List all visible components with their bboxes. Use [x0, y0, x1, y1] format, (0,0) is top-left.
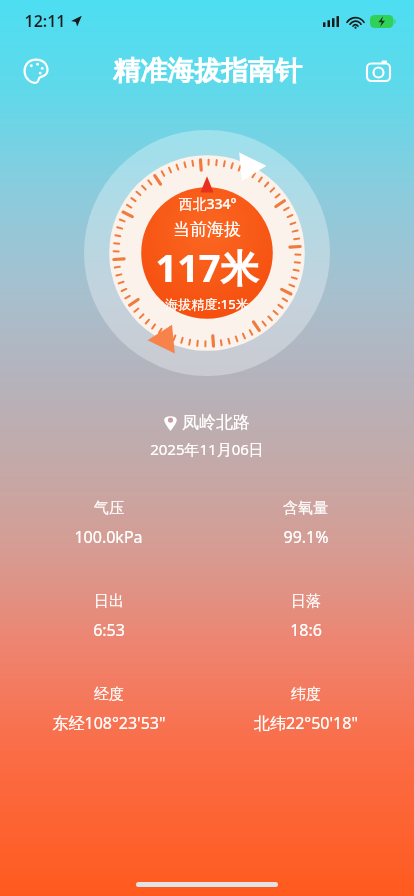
button[interactable]: 纬度: [207, 683, 404, 736]
button[interactable]: 凤岭北路: [158, 410, 256, 435]
button[interactable]: Compass dial: [84, 130, 330, 376]
staticText: 经度: [94, 685, 124, 704]
staticText: 凤岭北路: [182, 412, 250, 433]
staticText: 含氧量: [283, 499, 328, 518]
button[interactable]: 日出: [10, 590, 207, 643]
staticText: 日落: [291, 592, 321, 611]
staticText: 12:11: [24, 10, 66, 32]
button[interactable]: 经度: [10, 683, 207, 736]
staticText: 6:53: [93, 619, 125, 641]
button[interactable]: 气压: [10, 497, 207, 550]
staticText: 99.1%: [283, 526, 329, 548]
staticText: 西北334°: [178, 194, 237, 213]
staticText: 纬度: [291, 685, 321, 704]
button[interactable]: 日落: [207, 590, 404, 643]
staticText: 海拔精度:15米: [165, 295, 249, 313]
staticText: 100.0kPa: [74, 526, 143, 548]
staticText: 北纬22°50'18": [254, 712, 358, 734]
staticText: 气压: [94, 499, 124, 518]
staticText: 18:6: [290, 619, 322, 641]
button[interactable]: Theme: [14, 49, 58, 93]
staticText: 日出: [94, 592, 124, 611]
staticText: 2025年11月06日: [150, 439, 264, 459]
staticText: 精准海拔指南针: [113, 54, 302, 88]
staticText: 当前海拔: [173, 219, 241, 240]
staticText: 117米: [155, 241, 259, 293]
button[interactable]: Camera: [356, 49, 400, 93]
staticText: 东经108°23'53": [52, 712, 166, 734]
button[interactable]: 含氧量: [207, 497, 404, 550]
